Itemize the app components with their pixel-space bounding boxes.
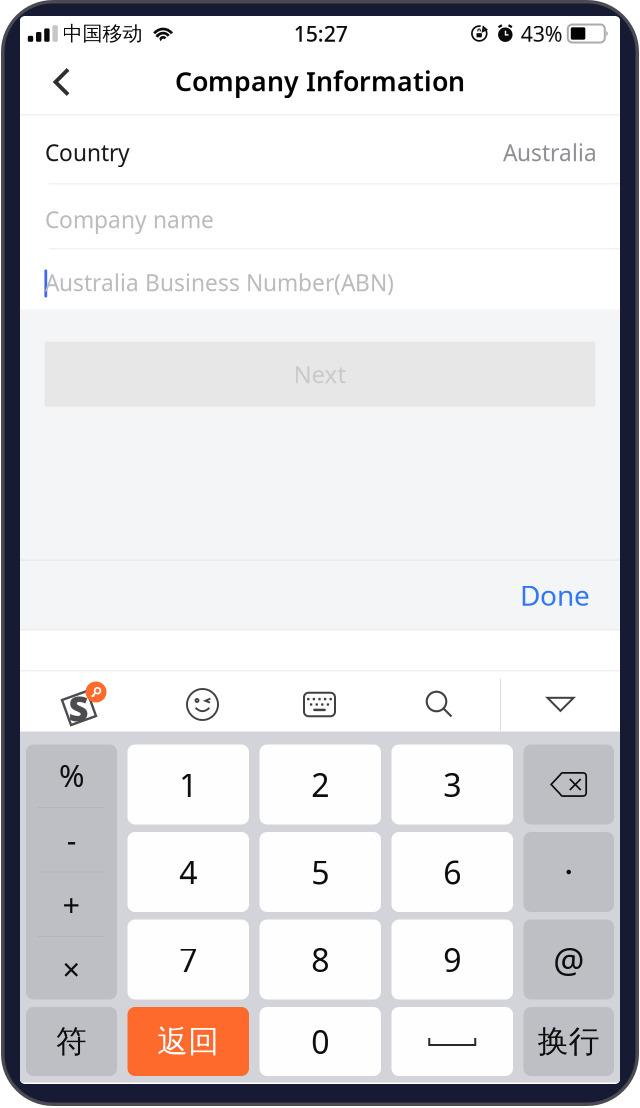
- button[interactable]: 3: [391, 744, 513, 824]
- button[interactable]: 7: [127, 919, 249, 999]
- staticText: 返回: [157, 1023, 219, 1060]
- button[interactable]: Company name: [20, 184, 620, 248]
- staticText: ×: [62, 948, 80, 989]
- staticText: 8: [311, 938, 329, 981]
- button[interactable]: ×: [26, 937, 117, 1001]
- button[interactable]: [391, 1007, 513, 1076]
- button[interactable]: Keyboard layout: [260, 678, 379, 730]
- button[interactable]: Country: [20, 115, 620, 183]
- button[interactable]: 4: [127, 832, 249, 912]
- staticText: 6: [443, 851, 461, 893]
- button[interactable]: [523, 744, 614, 824]
- button[interactable]: Hide keyboard: [501, 678, 620, 730]
- staticText: Australia: [503, 137, 597, 167]
- staticText: 1: [179, 763, 197, 806]
- button[interactable]: Emoji: [145, 678, 260, 730]
- button[interactable]: -: [26, 808, 117, 872]
- staticText: 3: [443, 763, 461, 806]
- staticText: Next: [293, 358, 346, 390]
- staticText: S: [68, 685, 88, 731]
- button[interactable]: 符: [26, 1007, 117, 1076]
- button[interactable]: +: [26, 872, 117, 936]
- button[interactable]: Done: [490, 560, 620, 630]
- staticText: 15:27: [294, 19, 348, 48]
- staticText: 43%: [521, 19, 563, 48]
- button[interactable]: 8: [259, 919, 381, 999]
- button[interactable]: Sogou input: [20, 678, 145, 730]
- button[interactable]: @: [523, 919, 614, 999]
- staticText: +: [62, 884, 80, 925]
- staticText: 符: [56, 1023, 87, 1060]
- button[interactable]: 0: [259, 1007, 381, 1076]
- button[interactable]: 2: [259, 744, 381, 824]
- staticText: 中国移动: [63, 21, 143, 46]
- staticText: %: [59, 755, 84, 795]
- button[interactable]: 9: [391, 919, 513, 999]
- button[interactable]: %: [26, 743, 117, 807]
- button[interactable]: Back: [20, 49, 81, 114]
- staticText: Australia Business Number(ABN): [45, 267, 394, 297]
- button[interactable]: Australia Business Number(ABN): [20, 249, 620, 309]
- staticText: 7: [179, 938, 197, 981]
- staticText: -: [66, 819, 76, 860]
- button[interactable]: Search: [379, 678, 500, 730]
- staticText: 0: [311, 1020, 329, 1063]
- button[interactable]: [523, 832, 614, 912]
- button[interactable]: 1: [127, 744, 249, 824]
- button[interactable]: 5: [259, 832, 381, 912]
- staticText: 2: [311, 763, 329, 806]
- staticText: Done: [520, 576, 590, 614]
- staticText: 9: [443, 938, 461, 981]
- button[interactable]: 6: [391, 832, 513, 912]
- staticText: 5: [311, 851, 329, 893]
- staticText: @: [553, 936, 584, 982]
- staticText: 换行: [538, 1023, 600, 1060]
- staticText: Country: [45, 137, 130, 167]
- staticText: Company name: [45, 204, 214, 234]
- button[interactable]: 返回: [127, 1007, 249, 1076]
- staticText: Company Information: [175, 63, 465, 99]
- button[interactable]: 换行: [523, 1007, 614, 1076]
- staticText: 4: [179, 851, 197, 893]
